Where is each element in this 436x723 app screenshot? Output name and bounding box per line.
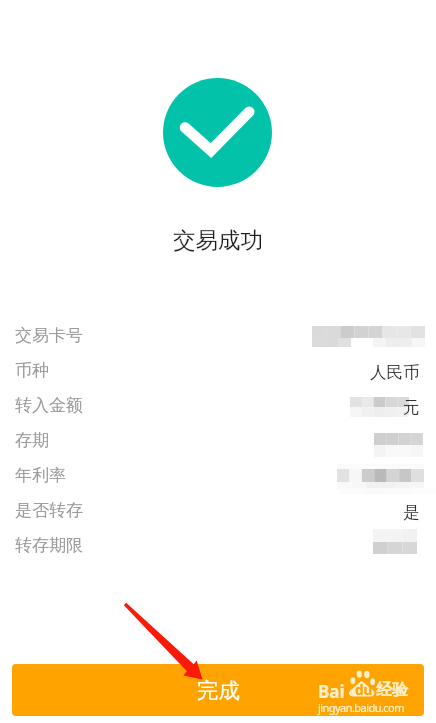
staticText: 元 [403, 397, 420, 418]
staticText: 完成 [197, 677, 240, 704]
staticText: 年利率 [15, 465, 66, 486]
staticText: jingyan.baidu.com [318, 700, 404, 715]
staticText: Bai [318, 680, 345, 703]
staticText: 转存期限 [15, 535, 83, 556]
staticText: du [355, 681, 373, 699]
staticText: 转入金额 [15, 395, 83, 416]
staticText: 是 [403, 502, 420, 523]
staticText: 经验 [376, 680, 408, 700]
staticText: 交易成功 [173, 226, 263, 254]
button[interactable]: 完成 [12, 664, 424, 716]
staticText: 是否转存 [15, 500, 83, 521]
staticText: 人民币 [370, 362, 420, 383]
staticText: 交易卡号 [15, 325, 83, 346]
staticText: 币种 [15, 360, 49, 381]
staticText: 存期 [15, 430, 49, 451]
